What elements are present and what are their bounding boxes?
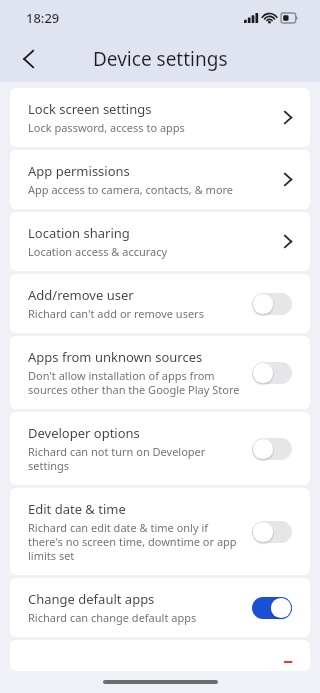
staticText: Lock password, access to apps xyxy=(28,120,185,135)
staticText: Lock screen settings xyxy=(28,100,152,118)
staticText: 18:29 xyxy=(26,9,60,27)
staticText: Richard can change default apps xyxy=(28,610,197,625)
staticText: Richard can edit date & time only if the… xyxy=(28,520,237,563)
button[interactable]: Add/remove user xyxy=(10,274,310,333)
staticText: App permissions xyxy=(28,162,130,180)
button[interactable]: Back xyxy=(6,37,50,81)
button[interactable]: Edit date & time xyxy=(10,488,310,575)
button[interactable]: App permissions xyxy=(10,150,310,209)
button[interactable]: Location sharing xyxy=(10,212,310,271)
button[interactable]: Lock screen settings xyxy=(10,88,310,147)
staticText: Don't allow installation of apps from so… xyxy=(28,368,240,397)
staticText: Change default apps xyxy=(28,590,155,608)
button[interactable]: Reset device & delete data xyxy=(10,640,310,671)
staticText: Add/remove user xyxy=(28,286,134,304)
button[interactable]: Toggle on xyxy=(246,591,298,625)
button[interactable]: Toggle off xyxy=(246,515,298,549)
staticText: Location sharing xyxy=(28,224,130,242)
button[interactable]: Change default apps xyxy=(10,578,310,637)
staticText: Location access & accuracy xyxy=(28,244,168,259)
button[interactable]: Toggle off xyxy=(246,356,298,390)
staticText: Richard can't add or remove users xyxy=(28,306,204,321)
button[interactable]: Toggle off xyxy=(246,287,298,321)
staticText: Edit date & time xyxy=(28,500,126,518)
staticText: Richard can not turn on Developer settin… xyxy=(28,444,206,473)
button[interactable]: Apps from unknown sources xyxy=(10,336,310,409)
button[interactable]: Toggle off xyxy=(246,432,298,466)
button[interactable]: Developer options xyxy=(10,412,310,485)
staticText: Developer options xyxy=(28,424,140,442)
staticText: App access to camera, contacts, & more xyxy=(28,182,234,197)
staticText: Device settings xyxy=(93,46,228,72)
staticText: Apps from unknown sources xyxy=(28,348,203,366)
